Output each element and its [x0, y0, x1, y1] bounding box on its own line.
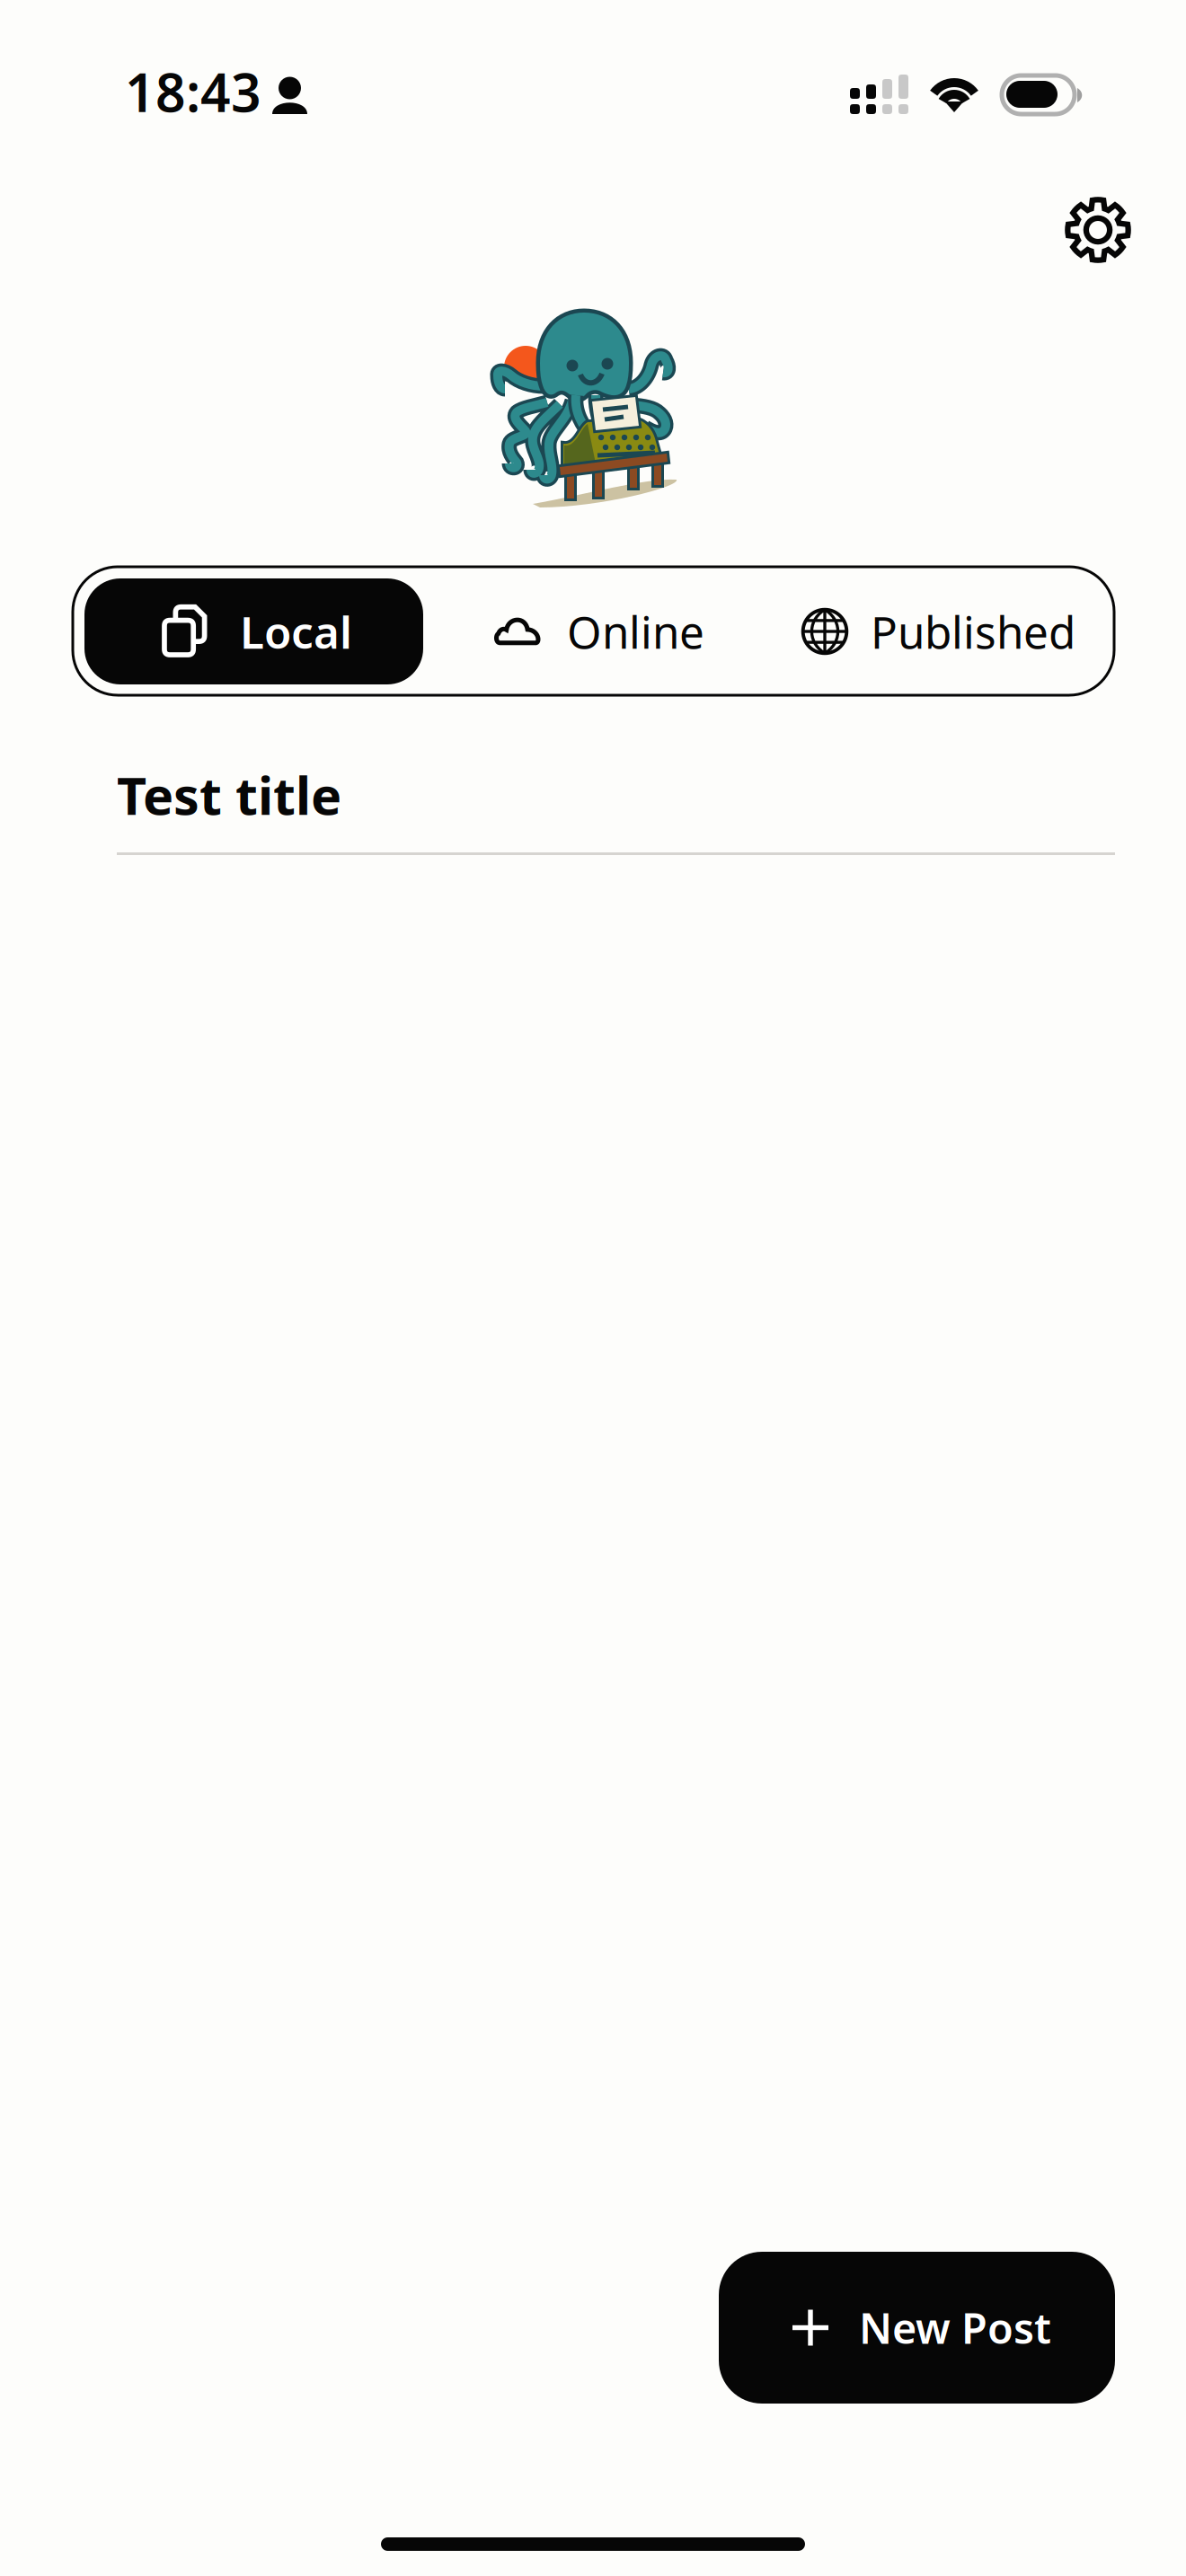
staticText: 18:43: [125, 57, 261, 127]
button[interactable]: Test title: [117, 737, 1115, 852]
staticText: New Post: [859, 2300, 1051, 2355]
staticText: Online: [567, 602, 704, 661]
staticText: Local: [240, 602, 352, 661]
button[interactable]: Published: [784, 578, 1081, 684]
staticText: Test title: [117, 761, 341, 829]
button[interactable]: Settings: [1049, 181, 1147, 279]
button[interactable]: Local: [84, 578, 423, 684]
button[interactable]: New Post: [719, 2252, 1115, 2404]
button[interactable]: Online: [474, 578, 725, 684]
staticText: Published: [871, 602, 1075, 661]
